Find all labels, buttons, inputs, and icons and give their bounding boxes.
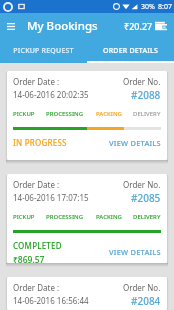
staticText: 14-06-2016 17:07:15	[13, 192, 89, 203]
staticText: 30%	[141, 2, 155, 12]
staticText: 8:07	[158, 2, 172, 12]
staticText: #2084	[131, 294, 161, 308]
button[interactable]: Order Date :	[7, 174, 167, 263]
staticText: PROCESSING	[46, 110, 84, 118]
button[interactable]: Order Date :	[7, 277, 167, 310]
staticText: Order No.	[123, 179, 161, 190]
staticText: ORDER DETAILS	[103, 46, 158, 56]
staticText: DELIVERY	[133, 213, 161, 221]
button[interactable]: Order Date :	[7, 71, 167, 160]
staticText: Order Date :	[13, 282, 60, 293]
staticText: Order No.	[123, 76, 161, 87]
staticText: Order No.	[123, 282, 161, 293]
button[interactable]: ORDER DETAILS	[87, 38, 174, 63]
staticText: PACKING	[96, 213, 122, 221]
staticText: Order Date :	[13, 179, 60, 190]
staticText: PICKUP	[13, 110, 35, 118]
staticText: #2085	[131, 191, 161, 205]
button[interactable]: Open navigation menu	[7, 19, 21, 33]
staticText: DELIVERY	[133, 110, 161, 118]
staticText: ₹20.27	[124, 20, 153, 32]
staticText: Order Date :	[13, 76, 60, 87]
button[interactable]: VIEW DETAILS	[109, 247, 161, 257]
staticText: PACKING	[96, 110, 122, 118]
staticText: 14-06-2016 16:56:44	[13, 295, 89, 306]
staticText: PICKUP REQUEST	[13, 46, 74, 56]
staticText: IN PROGRESS	[13, 137, 67, 148]
staticText: VIEW DETAILS	[109, 247, 161, 257]
button[interactable]: VIEW DETAILS	[109, 138, 161, 148]
staticText: COMPLETED	[13, 240, 62, 251]
staticText: My Bookings	[27, 18, 98, 34]
staticText: #2088	[131, 88, 161, 102]
staticText: VIEW DETAILS	[109, 138, 161, 148]
button[interactable]: ₹20.27	[123, 18, 168, 34]
staticText: ₹869.57	[13, 254, 45, 263]
button[interactable]: PICKUP REQUEST	[0, 38, 87, 63]
staticText: PICKUP	[13, 213, 35, 221]
staticText: 14-06-2016 20:02:35	[13, 89, 89, 100]
staticText: PROCESSING	[46, 213, 84, 221]
